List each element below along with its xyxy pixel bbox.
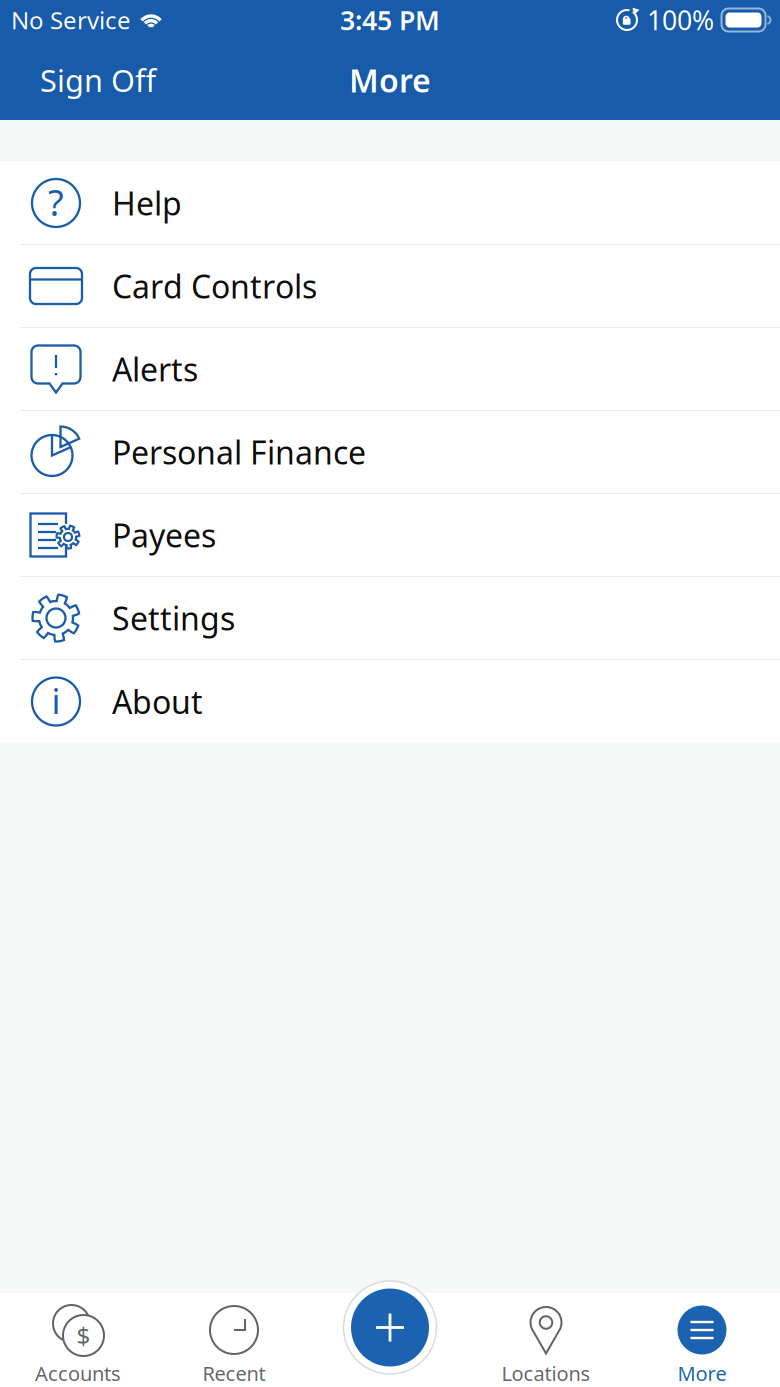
button[interactable]: Alerts bbox=[0, 328, 780, 411]
button[interactable]: Sign Off bbox=[20, 52, 176, 108]
staticText: Payees bbox=[112, 514, 216, 556]
staticText: More bbox=[349, 59, 431, 101]
staticText: Accounts bbox=[35, 1360, 121, 1387]
staticText: Personal Finance bbox=[112, 431, 366, 473]
button[interactable]: Card Controls bbox=[0, 245, 780, 328]
staticText: Locations bbox=[501, 1360, 590, 1387]
staticText: 3:45 PM bbox=[340, 2, 440, 38]
staticText: Sign Off bbox=[40, 60, 156, 100]
staticText: $ bbox=[76, 1320, 90, 1351]
staticText: Card Controls bbox=[112, 265, 317, 307]
button[interactable]: Recent bbox=[156, 1293, 312, 1387]
button[interactable]: Add bbox=[343, 1281, 436, 1374]
staticText: Alerts bbox=[112, 348, 198, 390]
button[interactable]: $ bbox=[0, 1293, 156, 1387]
staticText: Settings bbox=[112, 597, 235, 639]
button[interactable]: Settings bbox=[0, 577, 780, 660]
staticText: More bbox=[677, 1360, 726, 1387]
button[interactable]: Personal Finance bbox=[0, 411, 780, 494]
staticText: ? bbox=[48, 178, 64, 226]
staticText: About bbox=[112, 680, 203, 723]
staticText: Recent bbox=[202, 1360, 265, 1387]
button[interactable]: Locations bbox=[468, 1293, 624, 1387]
staticText: i bbox=[51, 677, 60, 723]
button[interactable]: ? bbox=[0, 162, 780, 245]
button[interactable]: Payees bbox=[0, 494, 780, 577]
button[interactable]: More bbox=[624, 1293, 780, 1387]
staticText: Help bbox=[112, 182, 182, 224]
button[interactable]: i bbox=[0, 660, 780, 743]
staticText: No Service bbox=[11, 4, 131, 36]
staticText: 100% bbox=[647, 2, 714, 38]
